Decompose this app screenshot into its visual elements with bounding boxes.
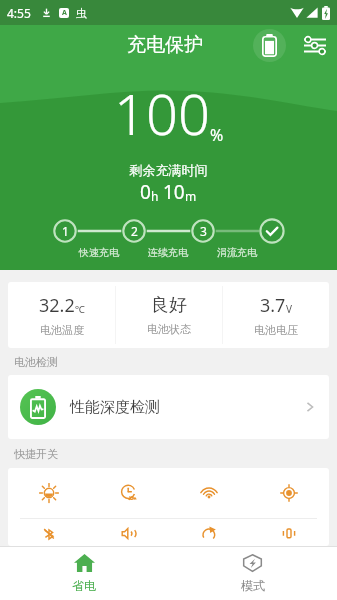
staticText: %	[210, 124, 224, 146]
staticText: 充电保护	[127, 33, 203, 57]
staticText: 电池状态	[147, 322, 191, 336]
staticText: A	[62, 8, 67, 18]
staticText: 性能深度检测	[70, 398, 160, 417]
staticText: 模式	[241, 578, 265, 593]
staticText: 省电	[72, 578, 96, 593]
staticText: 快捷开关	[14, 447, 58, 461]
button[interactable]: Battery	[253, 29, 286, 62]
staticText: 良好	[151, 294, 187, 317]
staticText: ℃	[75, 302, 85, 316]
button[interactable]: Settings	[298, 29, 331, 62]
button[interactable]: Sound	[89, 519, 169, 546]
button[interactable]: 良好	[116, 282, 222, 348]
button[interactable]: 省电	[0, 547, 168, 600]
staticText: 剩余充满时间	[0, 162, 337, 178]
button[interactable]: 性能深度检测	[8, 375, 329, 439]
staticText: 3	[200, 223, 207, 239]
staticText: 1	[62, 223, 69, 239]
button[interactable]: WiFi	[169, 468, 249, 518]
button[interactable]: Bluetooth	[8, 519, 89, 546]
staticText: 连续充电	[148, 246, 188, 259]
staticText: 2	[131, 223, 138, 239]
button[interactable]: Rotate	[169, 519, 249, 546]
staticText: h	[151, 188, 159, 204]
staticText: 0	[140, 179, 151, 205]
button[interactable]: 模式	[168, 547, 337, 600]
button[interactable]: Timeout	[89, 468, 169, 518]
staticText: m	[185, 188, 197, 204]
staticText: 电池温度	[40, 323, 84, 337]
staticText: 100	[114, 75, 210, 151]
button[interactable]: Brightness	[8, 468, 89, 518]
button[interactable]: Location	[249, 468, 329, 518]
button[interactable]: 32.2	[8, 282, 115, 348]
staticText: 3.7	[260, 293, 286, 318]
button[interactable]: 3.7	[223, 282, 329, 348]
staticText: 32.2	[39, 293, 75, 318]
staticText: 4:55	[7, 5, 31, 21]
staticText: 快速充电	[79, 246, 119, 259]
staticText: 涓流充电	[217, 246, 257, 259]
staticText: 10	[163, 179, 185, 205]
staticText: V	[286, 302, 292, 316]
staticText: 电池检测	[14, 355, 58, 369]
staticText: 虫	[76, 6, 87, 20]
staticText: 电池电压	[254, 323, 298, 337]
button[interactable]: Vibrate	[249, 519, 329, 546]
